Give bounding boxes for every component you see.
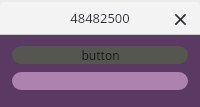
button[interactable]: Action <box>12 72 188 90</box>
button[interactable]: Close <box>169 8 191 30</box>
staticText: 48482500 <box>70 9 130 27</box>
button[interactable]: button <box>12 46 188 64</box>
staticText: button <box>81 47 120 63</box>
